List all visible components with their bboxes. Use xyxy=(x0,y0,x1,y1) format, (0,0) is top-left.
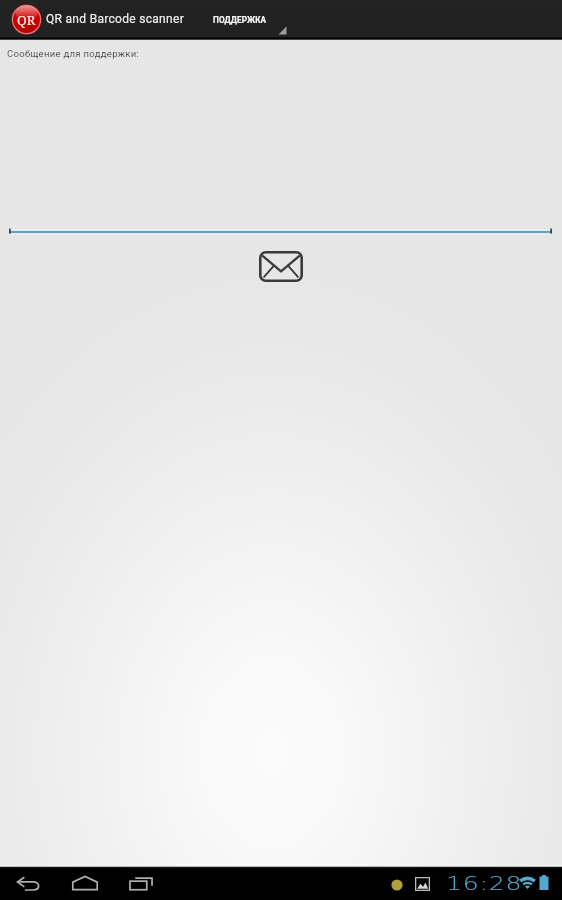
staticText: QR xyxy=(17,11,36,29)
staticText: Сообщение для поддержки: xyxy=(7,48,140,59)
staticText: QR and Barcode scanner xyxy=(46,12,185,26)
button[interactable]: Home xyxy=(60,865,110,900)
staticText: ПОДДЕРЖКА xyxy=(213,15,267,25)
staticText: 16:28 xyxy=(446,871,523,894)
button[interactable]: ПОДДЕРЖКА xyxy=(198,0,288,37)
button[interactable]: Recent apps xyxy=(116,865,166,900)
button[interactable]: Send message xyxy=(259,251,303,282)
button[interactable]: Back xyxy=(2,865,54,900)
